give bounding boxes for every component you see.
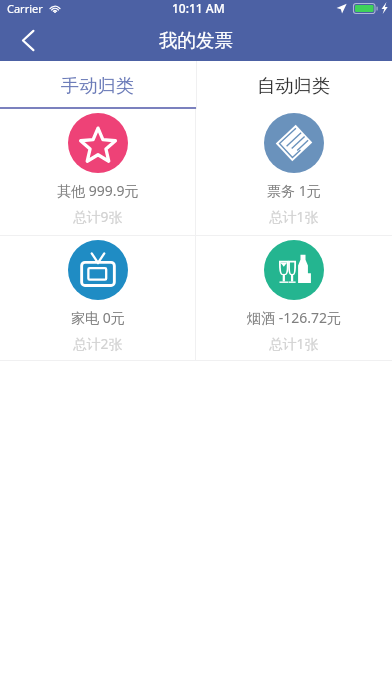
staticText: 自动归类 [257,74,331,97]
staticText: Carrier [7,1,43,16]
button[interactable]: 家电 0元 [0,236,195,360]
staticText: 手动归类 [61,74,135,97]
staticText: 总计2张 [73,334,123,353]
button[interactable]: 其他 999.9元 [0,109,195,235]
button[interactable]: Back [0,20,52,61]
staticText: 烟酒 -126.72元 [247,308,341,327]
staticText: 家电 0元 [71,308,125,327]
staticText: 其他 999.9元 [57,181,139,200]
staticText: 票务 1元 [267,181,321,200]
staticText: 总计1张 [269,334,319,353]
staticText: 10:11 AM [172,0,225,16]
button[interactable]: 烟酒 -126.72元 [196,236,392,360]
button[interactable]: 票务 1元 [196,109,392,235]
button[interactable]: 自动归类 [196,61,392,109]
staticText: 总计9张 [73,207,123,226]
staticText: 我的发票 [159,29,233,52]
staticText: 总计1张 [269,207,319,226]
button[interactable]: 手动归类 [0,61,196,109]
